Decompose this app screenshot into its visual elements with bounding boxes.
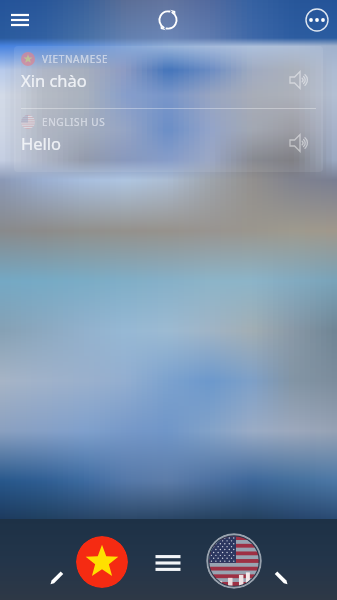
staticText: VIETNAMESE <box>42 52 109 66</box>
button[interactable]: Type English <box>267 563 295 591</box>
button[interactable]: VIETNAMESE <box>14 46 323 108</box>
staticText: ENGLISH US <box>42 115 106 129</box>
staticText: Xin chào <box>21 69 87 91</box>
button[interactable]: ENGLISH US <box>14 109 323 171</box>
button[interactable]: Menu <box>0 0 40 40</box>
button[interactable]: Play audio <box>282 63 316 97</box>
button[interactable]: More options <box>297 0 337 40</box>
button[interactable]: Swap languages <box>148 0 188 40</box>
button[interactable]: History <box>150 545 186 581</box>
button[interactable]: Play audio <box>282 126 316 160</box>
button[interactable]: Type Vietnamese <box>42 563 70 591</box>
button[interactable]: Speak Vietnamese <box>76 536 128 588</box>
button[interactable]: Speak English <box>206 533 262 589</box>
staticText: Hello <box>21 132 62 154</box>
